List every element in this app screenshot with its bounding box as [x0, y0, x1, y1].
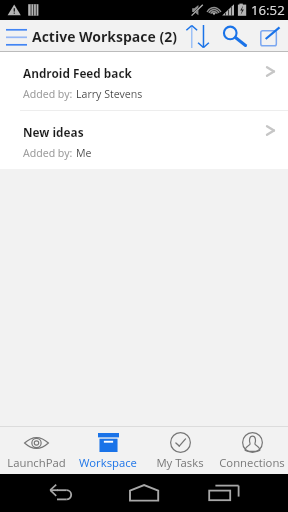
staticText: Workspace — [79, 455, 137, 470]
button[interactable]: Menu — [0, 20, 32, 52]
button[interactable]: LaunchPad — [0, 427, 72, 474]
staticText: Connections — [219, 455, 285, 470]
staticText: LaunchPad — [7, 455, 66, 470]
button[interactable]: Sort — [179, 20, 216, 52]
staticText: Android Feed back — [23, 65, 132, 81]
staticText: Added by: — [23, 87, 76, 101]
staticText: Me — [76, 146, 92, 160]
button[interactable]: Search — [216, 20, 252, 52]
staticText: Added by: — [23, 146, 76, 160]
staticText: 16:52 — [251, 1, 285, 19]
staticText: My Tasks — [156, 455, 204, 470]
button[interactable]: Workspace — [72, 427, 144, 474]
button[interactable]: Home — [124, 474, 164, 512]
staticText: Active Workspace (2) — [32, 27, 177, 46]
button[interactable]: New ideas — [0, 111, 288, 169]
button[interactable]: Back — [44, 474, 84, 512]
button[interactable]: Android Feed back — [0, 52, 288, 110]
button[interactable]: My Tasks — [144, 427, 216, 474]
button[interactable]: Compose — [252, 20, 288, 52]
button[interactable]: Recents — [204, 474, 244, 512]
button[interactable]: Connections — [216, 427, 288, 474]
staticText: Larry Stevens — [76, 87, 143, 101]
staticText: New ideas — [23, 124, 84, 140]
